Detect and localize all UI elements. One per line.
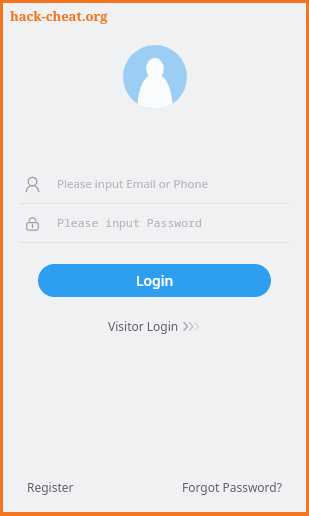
- staticText: Please input Email or Phone: [57, 176, 209, 192]
- staticText: hack-cheat.org: [10, 7, 108, 25]
- other: Password: [24, 215, 41, 232]
- button[interactable]: Email or phone: [3, 165, 306, 203]
- staticText: Please input Password: [57, 215, 202, 231]
- staticText: Login: [136, 271, 174, 290]
- staticText: Forgot Password?: [182, 479, 282, 495]
- button[interactable]: Forgot Password?: [178, 475, 286, 499]
- button[interactable]: Password: [3, 204, 306, 242]
- button[interactable]: Visitor Login: [98, 313, 212, 339]
- staticText: Register: [27, 479, 74, 495]
- other: Email or phone: [24, 176, 41, 193]
- staticText: Visitor Login: [108, 318, 179, 334]
- button[interactable]: Register: [23, 475, 78, 499]
- button[interactable]: Login: [38, 264, 271, 297]
